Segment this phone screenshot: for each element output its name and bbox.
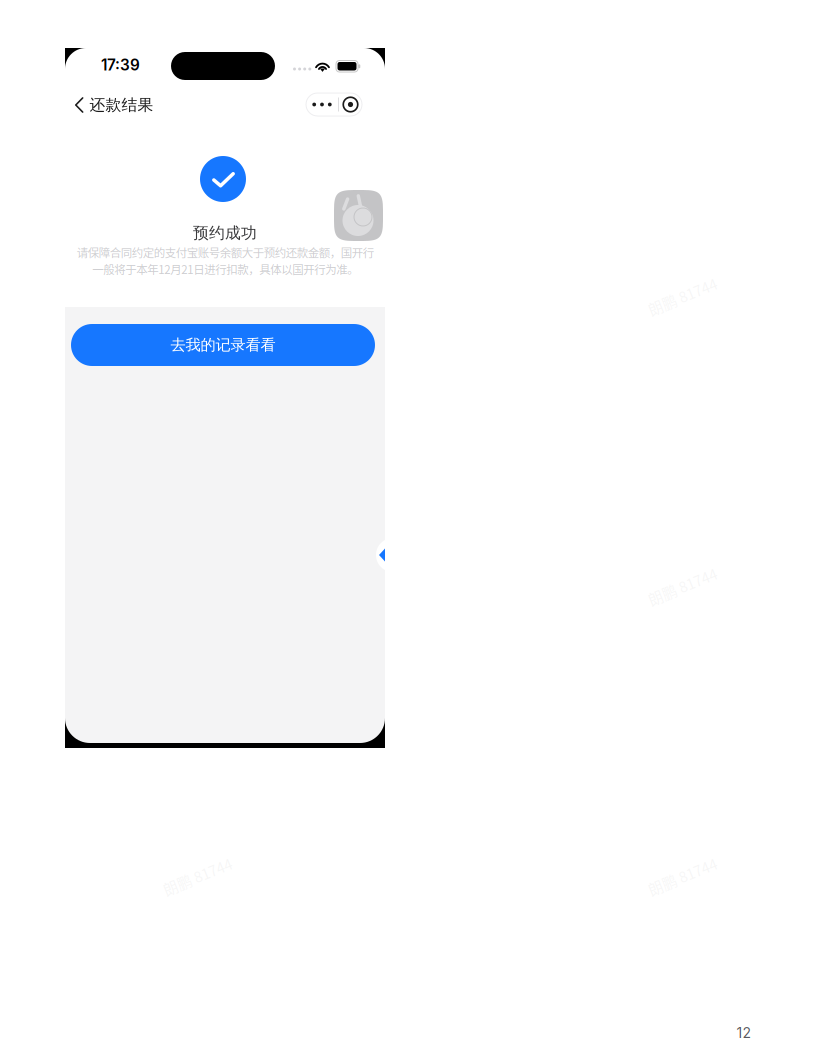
button[interactable]: 展开 bbox=[376, 538, 410, 572]
button[interactable]: 更多 bbox=[306, 93, 338, 116]
staticText: 去我的记录看看 bbox=[170, 335, 275, 354]
button[interactable]: 去我的记录看看 bbox=[71, 324, 375, 366]
staticText: 17:39 bbox=[101, 56, 140, 74]
staticText: 请保障合同约定的支付宝账号余额大于预约还款金额，国开行 一般将于本年12月21日… bbox=[76, 244, 373, 277]
staticText: 12 bbox=[736, 1024, 751, 1041]
staticText: 预约成功 bbox=[193, 223, 257, 243]
button[interactable]: 关闭 bbox=[339, 93, 362, 116]
button[interactable]: 还款结果 bbox=[65, 93, 163, 117]
staticText: 还款结果 bbox=[89, 95, 153, 115]
